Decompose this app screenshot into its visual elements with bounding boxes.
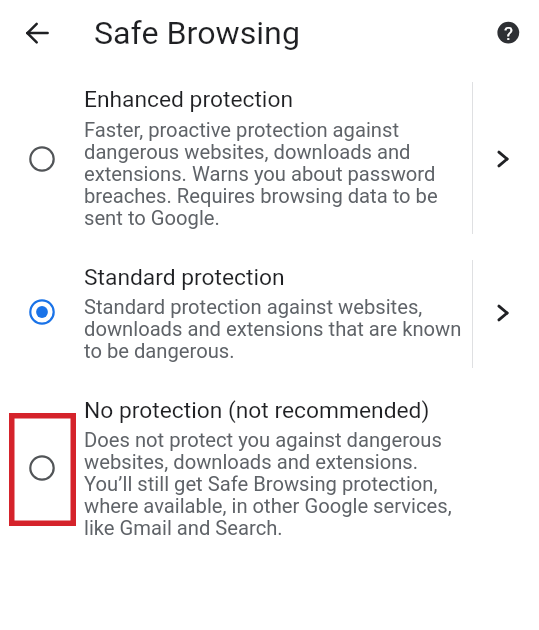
button[interactable]: Enhanced protection xyxy=(0,78,472,238)
staticText: Does not protect you against dangerous w… xyxy=(84,428,462,540)
button[interactable]: Standard protection xyxy=(0,256,472,372)
staticText: Safe Browsing xyxy=(94,14,300,52)
button[interactable]: Enhanced protection details xyxy=(473,82,539,234)
button[interactable]: No protection (not recommended) xyxy=(0,388,539,540)
staticText: Faster, proactive protection against dan… xyxy=(84,118,462,230)
staticText: ? xyxy=(504,22,513,44)
staticText: Standard protection against websites, do… xyxy=(84,295,462,363)
button[interactable]: Standard protection details xyxy=(473,260,539,368)
staticText: Enhanced protection xyxy=(84,86,294,113)
button[interactable]: Help xyxy=(488,12,529,53)
staticText: Standard protection xyxy=(84,264,285,291)
button[interactable]: Navigate up xyxy=(13,10,60,57)
staticText: No protection (not recommended) xyxy=(84,397,430,424)
